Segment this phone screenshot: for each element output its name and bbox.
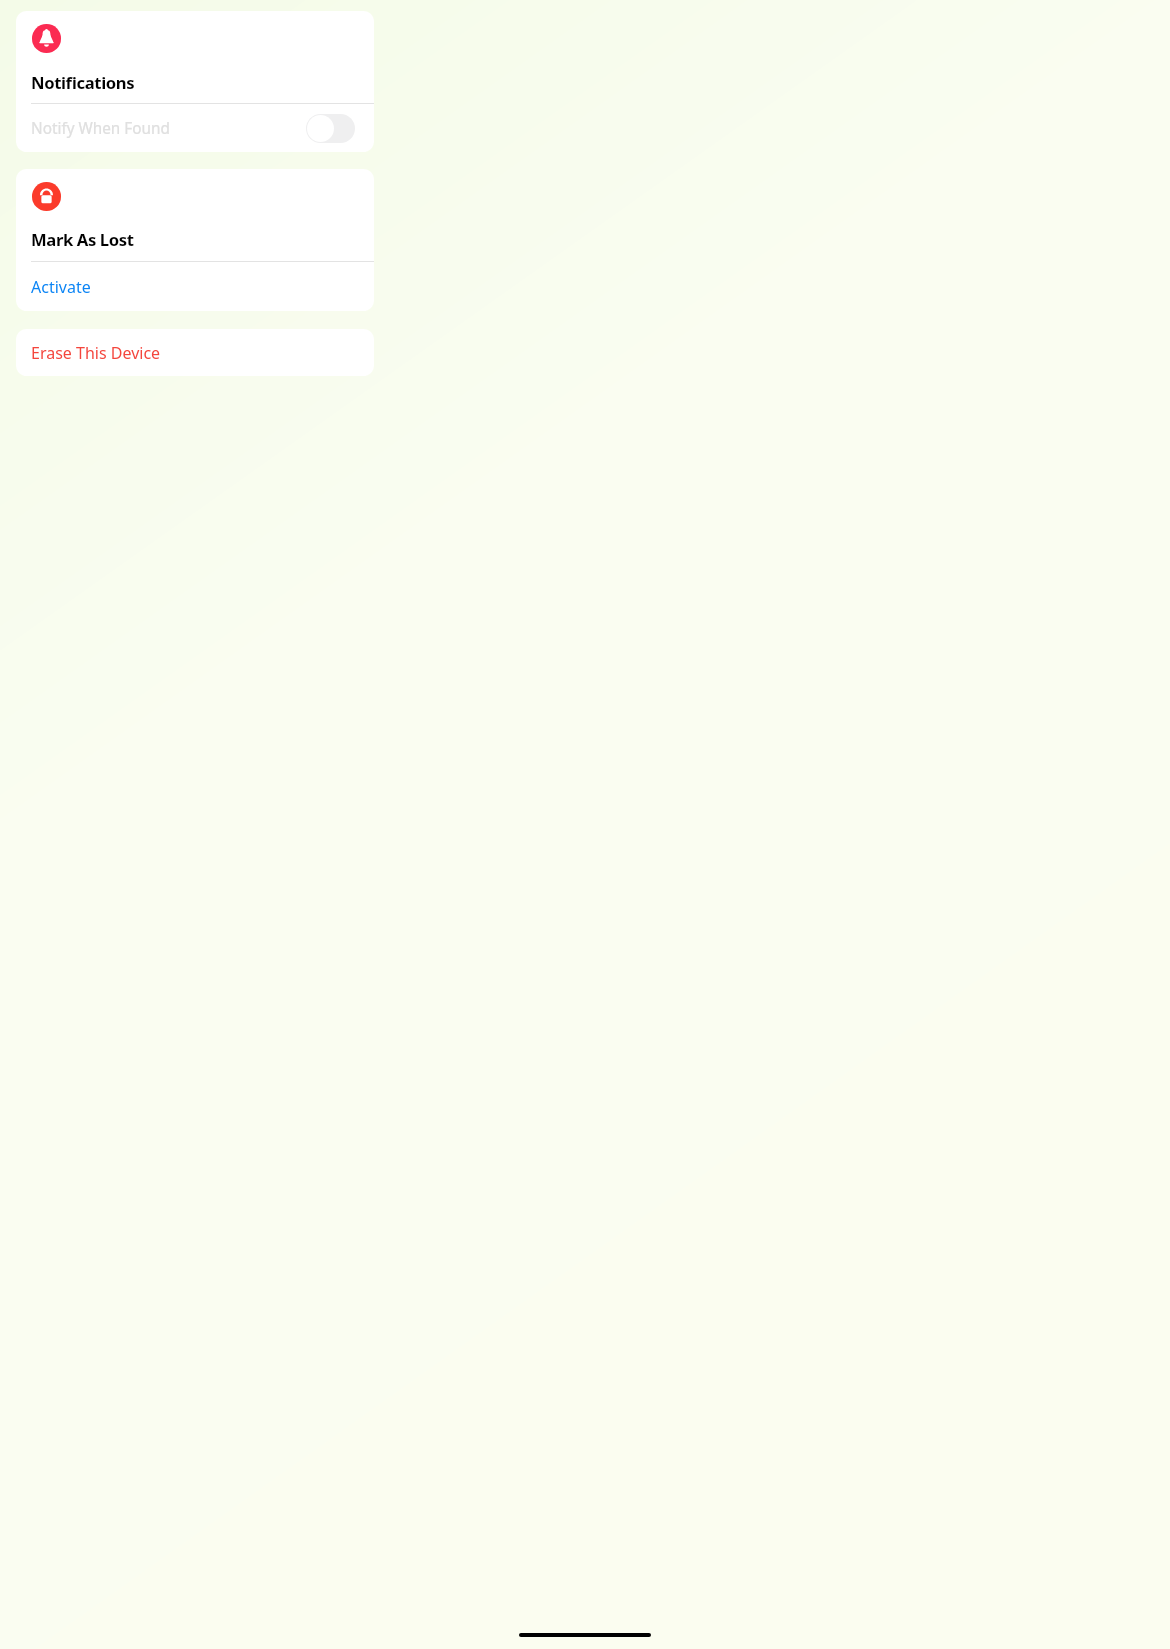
other: Notify When Found toggle xyxy=(306,114,355,143)
staticText: Notify When Found xyxy=(31,118,306,139)
staticText: Mark As Lost xyxy=(31,228,134,251)
staticText: Erase This Device xyxy=(31,342,161,364)
button[interactable]: Activate xyxy=(16,262,374,311)
other: Mark As Lost xyxy=(32,182,61,211)
other: Notifications xyxy=(32,24,61,53)
button[interactable]: Notify When Found xyxy=(16,104,374,152)
staticText: Notifications xyxy=(31,71,135,94)
button[interactable]: Erase This Device xyxy=(16,329,374,376)
staticText: Activate xyxy=(31,276,91,298)
